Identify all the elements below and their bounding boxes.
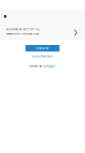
- button[interactable]: BLOGGEN ER FLYTTET TIL:: [0, 10, 85, 40]
- button[interactable]: Blogger: [44, 65, 56, 68]
- button[interactable]: Startsiden: [25, 45, 59, 51]
- staticText: Vis nettversjon: [32, 55, 53, 58]
- staticText: Blogger: [44, 65, 56, 68]
- staticText: WWW.KRISTIHAGEN.COM: [6, 32, 39, 35]
- staticText: Startsiden: [36, 47, 49, 50]
- staticText: Drevet av: [29, 65, 42, 68]
- staticText: BLOGGEN ER FLYTTET TIL:: [6, 28, 40, 31]
- button[interactable]: Vis nettversjon: [32, 55, 53, 58]
